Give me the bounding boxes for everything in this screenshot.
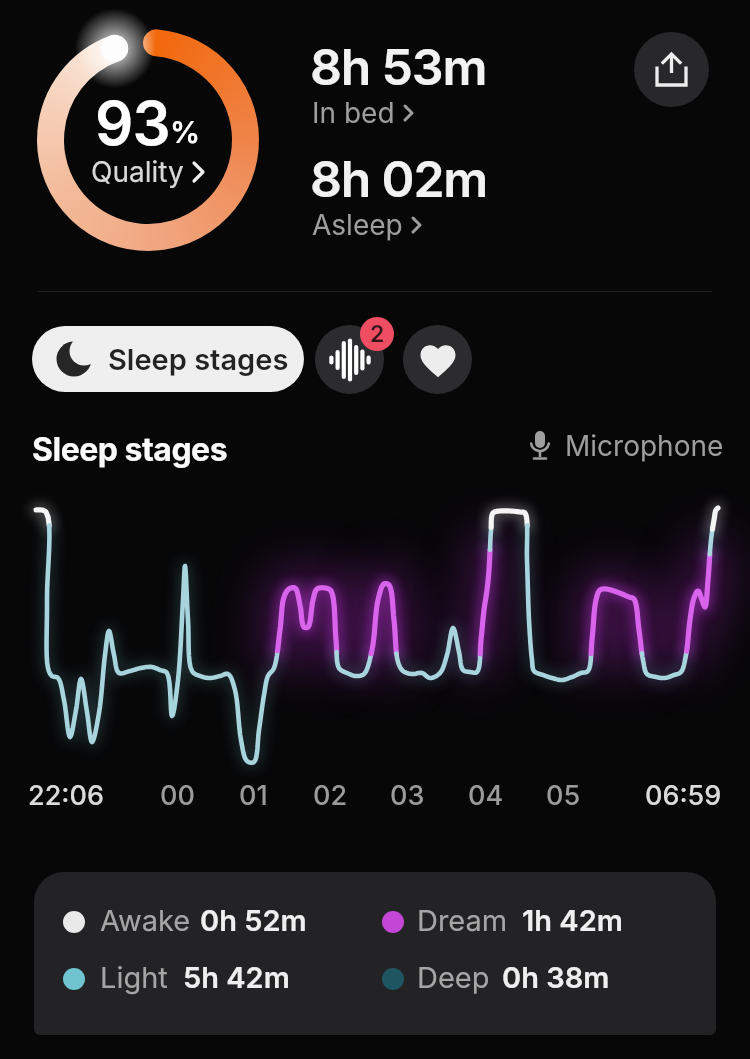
- staticText: 02: [313, 779, 348, 812]
- staticText: Sleep stages: [108, 342, 289, 377]
- button[interactable]: Microphone: [528, 429, 724, 463]
- staticText: 22:06: [28, 779, 104, 812]
- staticText: 0h 38m: [502, 960, 610, 995]
- staticText: 8h 53m: [310, 37, 487, 97]
- staticText: %: [170, 114, 201, 150]
- button[interactable]: In bed: [312, 96, 414, 130]
- staticText: 06:59: [645, 779, 722, 812]
- staticText: 0h 52m: [200, 903, 307, 938]
- staticText: 93: [95, 87, 170, 160]
- button[interactable]: 93: [36, 28, 260, 252]
- staticText: Asleep: [312, 208, 403, 242]
- staticText: 03: [390, 779, 425, 812]
- staticText: Awake: [100, 903, 191, 938]
- staticText: Microphone: [565, 429, 724, 463]
- staticText: Light: [100, 960, 168, 995]
- staticText: 01: [239, 779, 268, 812]
- staticText: Sleep stages: [32, 430, 228, 469]
- button[interactable]: Sleep stages: [32, 326, 304, 392]
- button[interactable]: [634, 32, 709, 107]
- staticText: 8h 02m: [310, 149, 488, 209]
- staticText: Dream: [417, 903, 508, 938]
- staticText: 5h 42m: [183, 960, 290, 995]
- staticText: 1h 42m: [522, 903, 623, 938]
- button[interactable]: [403, 325, 472, 394]
- staticText: Quality: [91, 155, 184, 189]
- staticText: Deep: [417, 960, 490, 995]
- staticText: 2: [370, 320, 385, 348]
- button[interactable]: [315, 325, 384, 394]
- staticText: 04: [468, 779, 504, 812]
- staticText: 05: [546, 779, 581, 812]
- button[interactable]: Asleep: [312, 208, 422, 242]
- staticText: In bed: [312, 96, 395, 130]
- staticText: 00: [160, 779, 195, 812]
